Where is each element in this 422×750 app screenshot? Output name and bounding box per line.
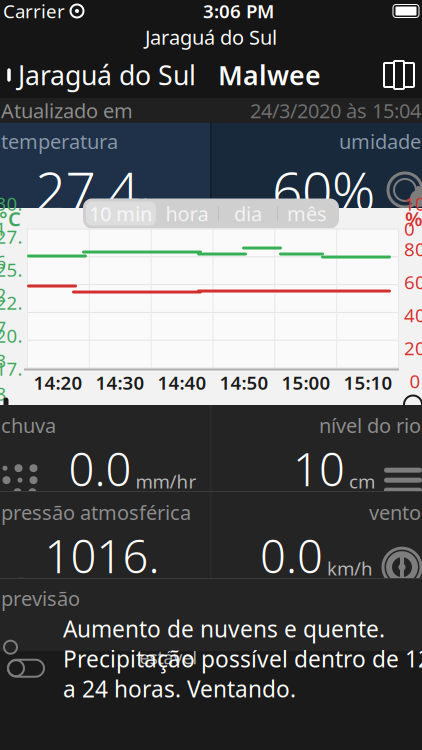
staticText: previsão <box>1 585 80 612</box>
staticText: 1016.1 <box>44 526 159 646</box>
staticText: 14:20 <box>33 370 82 395</box>
staticText: dia <box>234 200 262 227</box>
staticText: total do dia <box>41 499 133 522</box>
button[interactable]: 10 min <box>86 201 156 225</box>
staticText: nível do rio <box>319 412 421 439</box>
staticText: 20 <box>404 336 422 360</box>
staticText: 17.8 <box>0 356 22 406</box>
staticText: 14:50 <box>219 370 268 395</box>
staticText: mês <box>287 200 327 227</box>
button[interactable]: previsão <box>0 579 422 651</box>
staticText: 100 <box>404 191 422 241</box>
button[interactable]: nível do rio <box>211 405 422 491</box>
staticText: Jaraguá do Sul <box>145 24 277 50</box>
staticText: °C <box>0 205 21 232</box>
staticText: temperatura <box>1 128 118 155</box>
staticText: Carrier <box>3 0 65 23</box>
button[interactable]: Jaraguá do Sul <box>0 51 196 99</box>
staticText: 28.3° <box>151 192 206 222</box>
staticText: 0 <box>409 369 420 393</box>
staticText: 60% <box>272 155 375 225</box>
button[interactable]: chuva <box>0 405 210 491</box>
staticText: 25.2 <box>0 257 22 307</box>
staticText: 10 min <box>89 200 153 227</box>
button[interactable]: pressão atmosférica <box>0 492 210 578</box>
staticText: estável <box>318 499 375 522</box>
staticText: mm/hr <box>135 469 196 494</box>
staticText: 80 <box>404 237 422 261</box>
staticText: 60 <box>404 270 422 294</box>
staticText: Malwee <box>218 57 321 93</box>
staticText: 14:40 <box>157 370 206 395</box>
staticText: pressão atmosférica <box>1 499 191 526</box>
staticText: 24/3/2020 às 15:04 <box>250 97 421 124</box>
staticText: 0.0 <box>260 526 323 586</box>
staticText: hora <box>165 200 208 227</box>
staticText: 0.0 <box>68 439 131 499</box>
staticText: 40 <box>404 303 422 327</box>
staticText: umidade <box>339 128 421 155</box>
button[interactable]: hora <box>156 201 218 225</box>
staticText: 20.3 <box>0 323 22 373</box>
staticText: 0.4mm <box>139 499 196 522</box>
staticText: 27.6 <box>0 224 22 274</box>
staticText: Atualizado em <box>1 97 133 124</box>
staticText: 27.4° <box>35 155 138 296</box>
button[interactable]: dia <box>219 201 277 225</box>
staticText: Aumento de nuvens e quente. Precipitação… <box>63 614 422 704</box>
staticText: 15:00 <box>281 370 330 395</box>
staticText: 19.4° <box>151 228 206 258</box>
staticText: hPa <box>163 616 196 641</box>
button[interactable]: mês <box>278 201 336 225</box>
staticText: cm <box>349 469 375 494</box>
staticText: km/h <box>327 556 373 581</box>
button[interactable]: temperatura <box>0 123 210 208</box>
staticText: 15:10 <box>343 370 392 395</box>
staticText: Jaraguá do Sul <box>18 57 196 93</box>
button[interactable]: umidade <box>211 123 422 208</box>
staticText: 10 <box>293 439 345 499</box>
staticText: 30.1 <box>0 191 22 241</box>
staticText: estável <box>139 646 196 669</box>
staticText: 14:30 <box>95 370 144 395</box>
button[interactable]: vento <box>211 492 422 578</box>
staticText: 22.7 <box>0 290 22 340</box>
staticText: % <box>405 205 422 232</box>
button[interactable]: Map <box>383 54 422 96</box>
staticText: chuva <box>1 412 56 439</box>
staticText: 3:06 PM <box>203 0 274 23</box>
staticText: vento <box>369 499 421 526</box>
